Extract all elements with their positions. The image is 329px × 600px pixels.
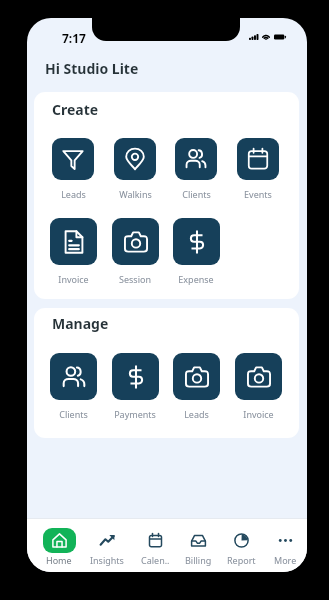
button[interactable]: Home: [37, 528, 81, 566]
button[interactable]: Invoice: [230, 353, 286, 420]
button[interactable]: Calen..: [133, 528, 177, 566]
staticText: Home: [46, 554, 72, 566]
staticText: 7:17: [62, 30, 86, 46]
staticText: Leads: [61, 188, 86, 200]
staticText: Session: [119, 273, 151, 285]
button[interactable]: Leads: [45, 138, 101, 200]
staticText: Manage: [52, 314, 109, 333]
button[interactable]: More: [263, 528, 307, 566]
button[interactable]: Clients: [45, 353, 101, 420]
staticText: Calen..: [141, 554, 170, 566]
staticText: Invoice: [243, 408, 274, 420]
button[interactable]: Payments: [107, 353, 163, 420]
button[interactable]: Clients: [168, 138, 224, 200]
staticText: Expense: [178, 273, 214, 285]
button[interactable]: Session: [107, 218, 163, 285]
staticText: Leads: [184, 408, 209, 420]
button[interactable]: Billing: [176, 528, 220, 566]
staticText: More: [274, 554, 297, 566]
staticText: Payments: [114, 408, 156, 420]
staticText: Insights: [90, 554, 124, 566]
button[interactable]: Events: [230, 138, 286, 200]
staticText: Create: [52, 100, 99, 119]
button[interactable]: Report: [219, 528, 263, 566]
button[interactable]: Walkins: [107, 138, 163, 200]
button[interactable]: Invoice: [45, 218, 101, 285]
button[interactable]: Insights: [85, 528, 129, 566]
staticText: Billing: [185, 554, 212, 566]
staticText: Hi Studio Lite: [45, 59, 139, 78]
button[interactable]: Leads: [168, 353, 224, 420]
button[interactable]: Expense: [168, 218, 224, 285]
staticText: Events: [244, 188, 272, 200]
staticText: Clients: [59, 408, 88, 420]
staticText: Clients: [182, 188, 211, 200]
staticText: Invoice: [58, 273, 89, 285]
staticText: Walkins: [119, 188, 152, 200]
staticText: Report: [227, 554, 256, 566]
